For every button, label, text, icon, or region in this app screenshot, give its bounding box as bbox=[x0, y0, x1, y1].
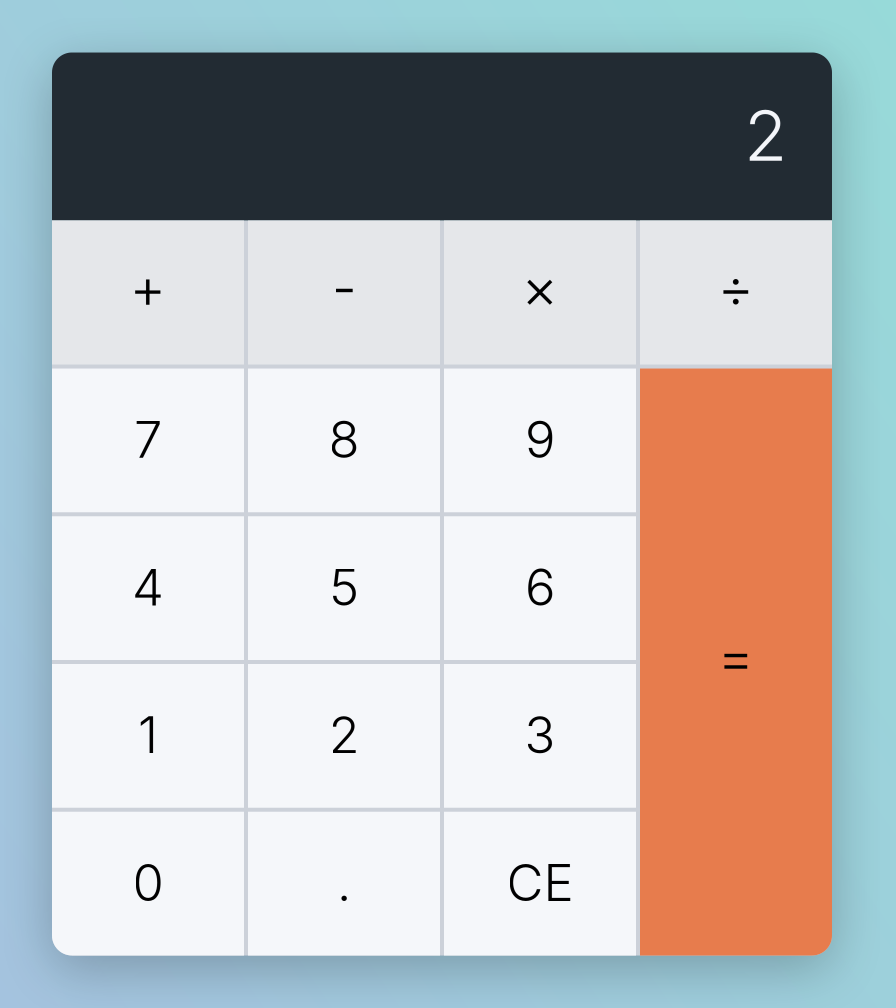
button[interactable]: Multiply bbox=[444, 220, 636, 364]
staticText: 0 bbox=[132, 852, 163, 913]
staticText: 8 bbox=[328, 409, 359, 470]
staticText: 3 bbox=[524, 704, 555, 765]
staticText: ÷ bbox=[717, 254, 754, 321]
button[interactable]: 7 bbox=[52, 368, 244, 512]
button[interactable]: Equals bbox=[640, 368, 832, 955]
button[interactable]: Decimal point bbox=[248, 812, 440, 956]
button[interactable]: Add bbox=[52, 220, 244, 364]
staticText: 4 bbox=[132, 556, 164, 618]
staticText: CE bbox=[506, 852, 573, 913]
staticText: + bbox=[129, 254, 166, 321]
button[interactable]: 2 bbox=[248, 664, 440, 808]
button[interactable]: 8 bbox=[248, 368, 440, 512]
staticText: = bbox=[717, 623, 754, 691]
staticText: 1 bbox=[138, 704, 158, 765]
button[interactable]: 6 bbox=[444, 516, 636, 660]
button[interactable]: 0 bbox=[52, 812, 244, 956]
button[interactable]: 1 bbox=[52, 664, 244, 808]
button[interactable]: Divide bbox=[640, 220, 832, 364]
staticText: × bbox=[521, 254, 558, 321]
staticText: 2 bbox=[328, 704, 359, 765]
button[interactable]: Subtract bbox=[248, 220, 440, 364]
button[interactable]: 9 bbox=[444, 368, 636, 512]
staticText: 6 bbox=[525, 556, 555, 618]
staticText: 5 bbox=[329, 556, 359, 618]
staticText: - bbox=[331, 254, 356, 321]
staticText: 7 bbox=[134, 409, 162, 470]
staticText: 9 bbox=[525, 409, 555, 470]
staticText: . bbox=[337, 852, 351, 913]
button[interactable]: 5 bbox=[248, 516, 440, 660]
staticText: 2 bbox=[744, 92, 787, 178]
button[interactable]: 3 bbox=[444, 664, 636, 808]
button[interactable]: 4 bbox=[52, 516, 244, 660]
button[interactable]: Clear entry bbox=[444, 812, 636, 956]
